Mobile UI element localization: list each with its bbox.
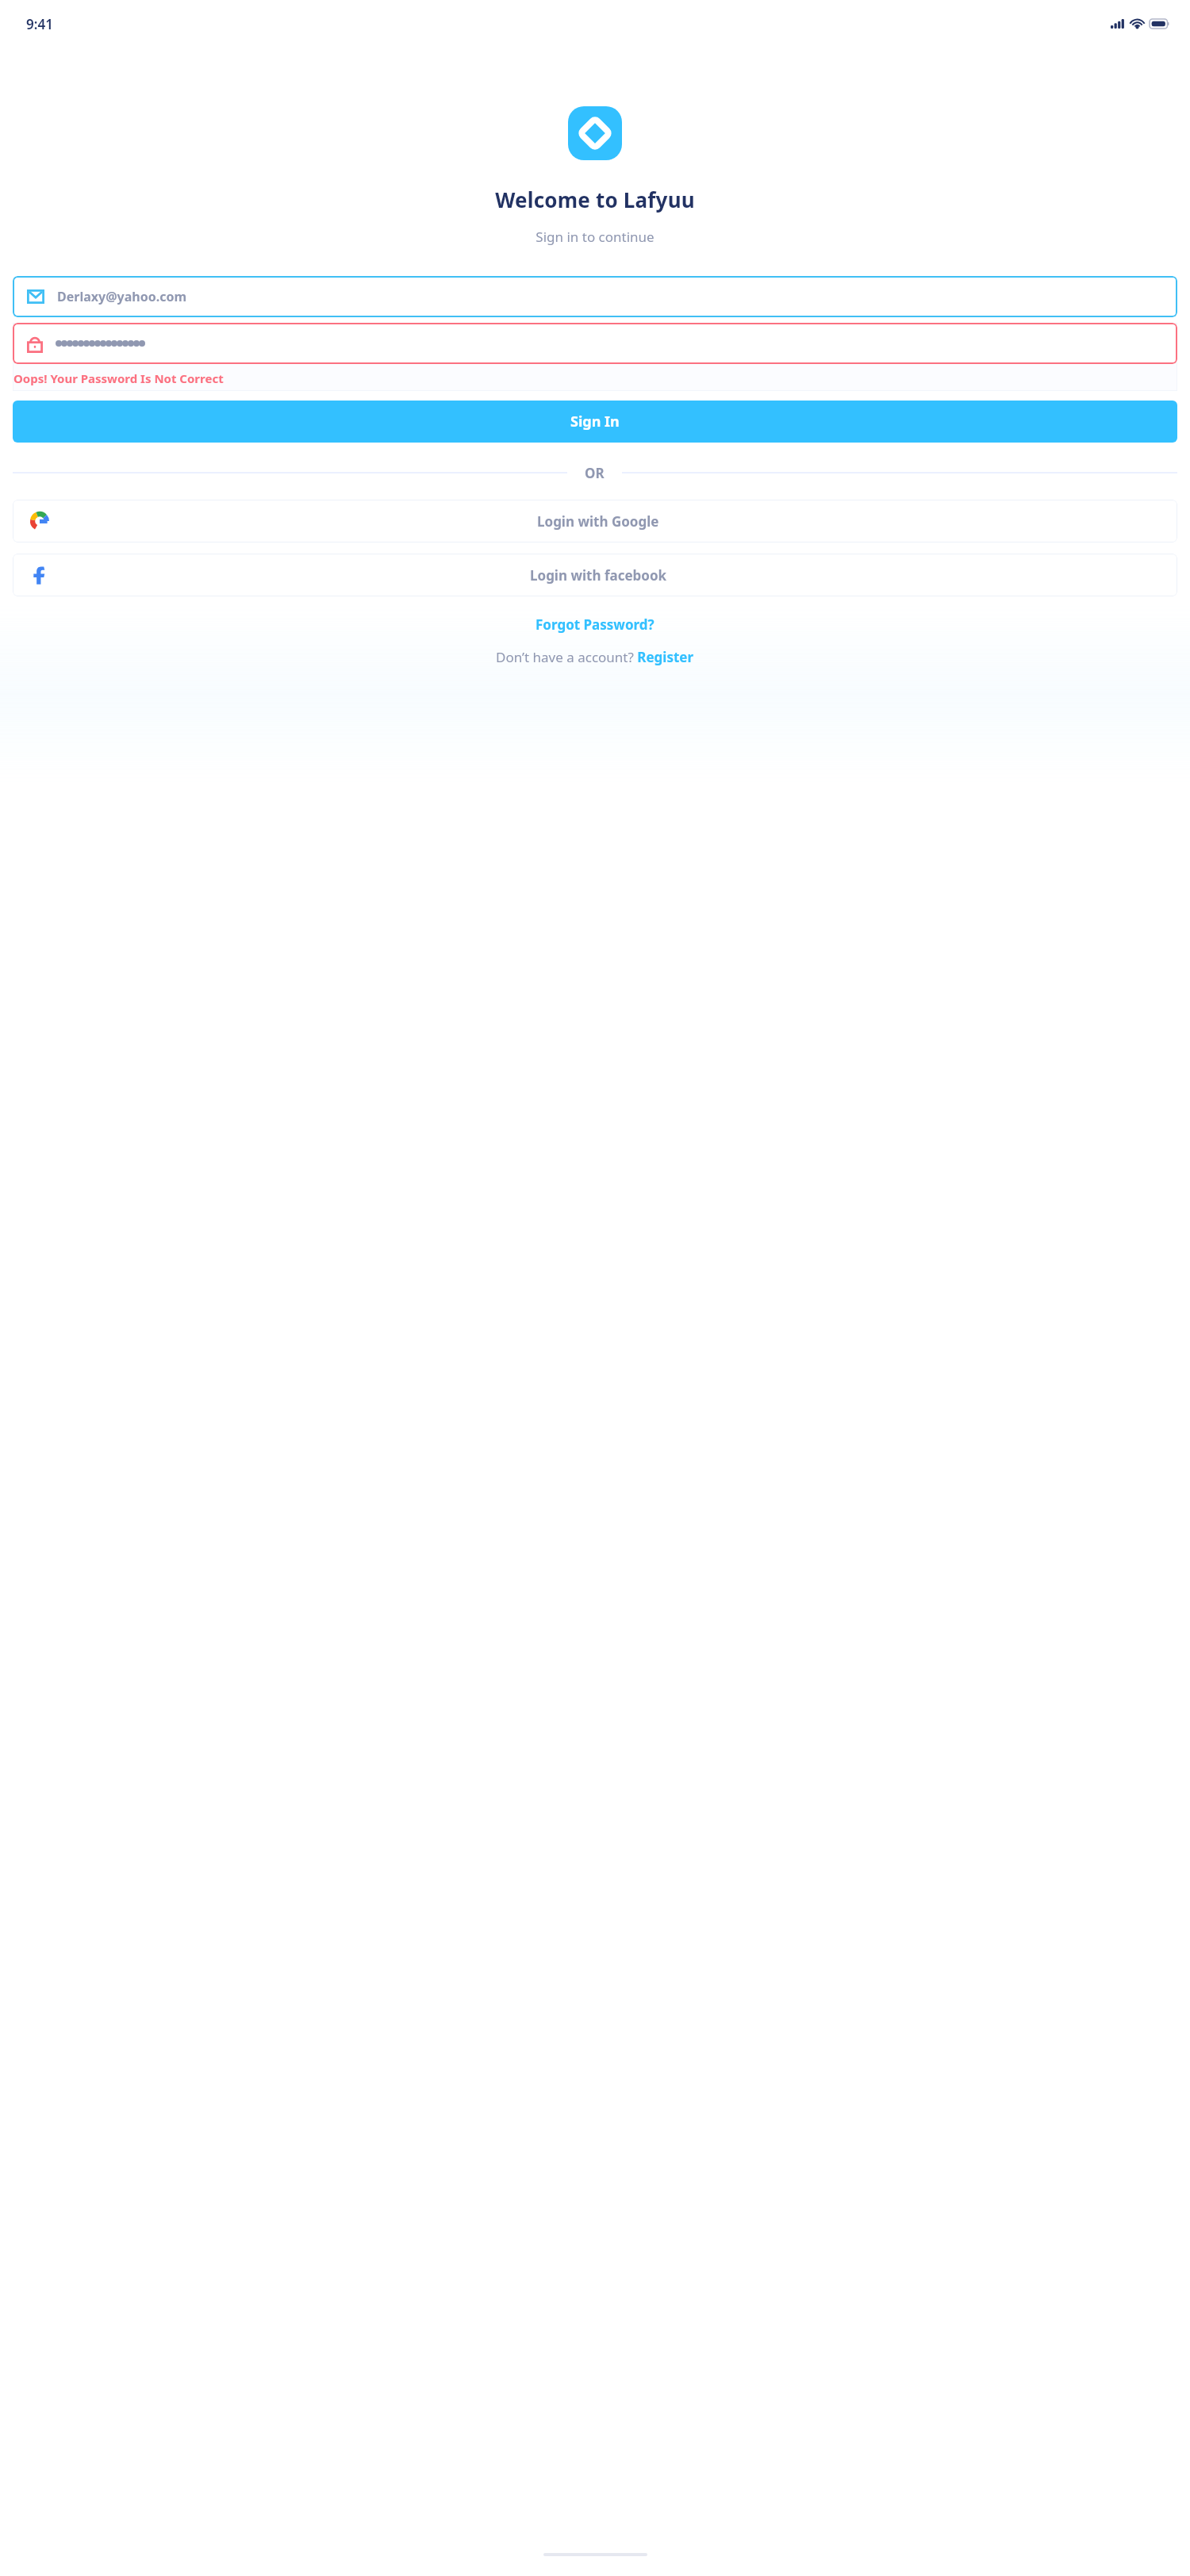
other: Facebook xyxy=(30,565,49,585)
button[interactable]: Forgot Password? xyxy=(13,615,1177,634)
other: Google xyxy=(30,512,49,531)
button[interactable]: Email xyxy=(13,276,1177,317)
button[interactable]: Sign In xyxy=(13,401,1177,443)
other: Email xyxy=(27,289,44,304)
button[interactable]: Facebook xyxy=(13,554,1177,596)
button[interactable]: Don’t have a account? Register xyxy=(13,648,1177,666)
staticText: 9:41 xyxy=(26,15,53,33)
button[interactable]: Password xyxy=(13,323,1177,364)
staticText: OR xyxy=(585,464,605,482)
button[interactable]: Google xyxy=(13,500,1177,542)
staticText: Sign In xyxy=(570,412,620,431)
staticText: Don’t have a account? Register xyxy=(496,648,694,666)
staticText: Login with facebook xyxy=(530,566,667,585)
staticText: Oops! Your Password Is Not Correct xyxy=(13,370,224,386)
staticText: Login with Google xyxy=(537,512,659,531)
staticText: Sign in to continue xyxy=(0,228,1190,246)
staticText: Welcome to Lafyuu xyxy=(0,186,1190,213)
staticText: Derlaxy@yahoo.com xyxy=(57,288,186,305)
other: Password xyxy=(27,335,43,353)
staticText: Forgot Password? xyxy=(535,615,654,634)
